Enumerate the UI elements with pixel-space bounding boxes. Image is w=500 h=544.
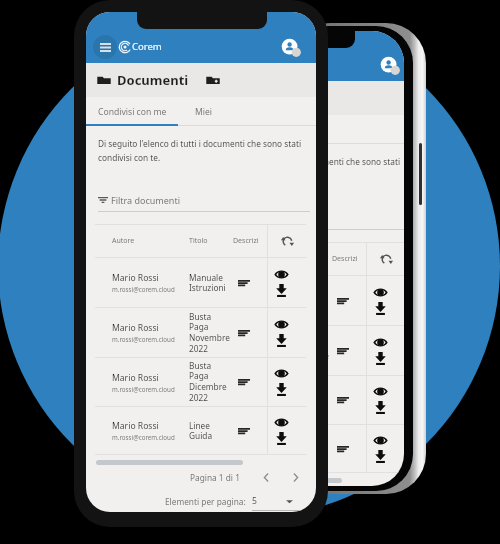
staticText: Titolo [297,254,337,264]
button[interactable]: Visualizza [373,287,388,298]
staticText: Miei [297,124,312,136]
staticText: Documenti [117,71,189,89]
staticText: m.rossi@corem.cloud [112,335,175,343]
staticText: Busta Paga Novembre 2022 [297,329,337,373]
button[interactable]: Nuova cartella [206,73,220,87]
staticText: Di seguito l'elenco di tutti i documenti… [297,156,404,181]
staticText: Mario Rossi [112,420,159,432]
button[interactable]: Scarica [276,284,287,297]
staticText: Busta Paga Dicembre 2022 [297,378,337,422]
staticText: Busta Paga Dicembre 2022 [189,360,238,404]
staticText: Linee Guida [189,420,238,442]
staticText: Di seguito l'elenco di tutti i documenti… [98,138,306,163]
button[interactable]: Scarica [375,302,386,315]
button[interactable]: Scarica [375,450,386,463]
button[interactable]: Visualizza [274,417,289,428]
staticText: m.rossi@corem.cloud [112,433,175,441]
button[interactable]: Condivisi con me [86,97,178,126]
staticText: Filtra documenti [111,194,180,206]
button[interactable]: Miei [178,97,230,126]
button[interactable]: Pagina precedente [260,471,273,484]
staticText: Autore [112,236,189,246]
button[interactable]: Miei [297,115,329,144]
button[interactable]: Visualizza [274,319,289,330]
button[interactable]: Visualizza [373,386,388,397]
staticText: Pagina 1 di 1 [190,472,240,483]
staticText: 5 [252,495,257,507]
staticText: Mario Rossi [112,272,159,284]
button[interactable]: Scarica [276,334,287,347]
staticText: Miei [195,106,213,118]
button[interactable]: Pagina successiva [289,471,302,484]
staticText: Mario Rossi [112,322,159,334]
button[interactable]: Scarica [375,401,386,414]
staticText: Descrizione [233,236,262,246]
staticText: Linee Guida [297,438,337,460]
button[interactable]: Visualizza [274,368,289,379]
staticText: Manuale Istruzioni [189,272,238,294]
staticText: Mario Rossi [112,372,159,384]
button[interactable]: Account [381,57,400,76]
staticText: Titolo [189,236,238,246]
button[interactable]: Nuova cartella [305,91,319,105]
button[interactable]: Scarica [276,432,287,445]
button[interactable]: Visualizza [373,435,388,446]
staticText: m.rossi@corem.cloud [112,285,175,293]
staticText: Elementi per pagina: [165,496,246,507]
staticText: m.rossi@corem.cloud [112,385,175,393]
staticText: Corem [132,40,162,53]
button[interactable]: Visualizza [373,337,388,348]
button[interactable]: Account [282,39,301,58]
button[interactable]: Scarica [375,352,386,365]
staticText: Condivisi con me [98,106,167,118]
button[interactable]: Seleziona elementi [285,497,294,506]
staticText: Descrizione [332,254,361,264]
button[interactable]: Menu [93,35,117,59]
staticText: Manuale Istruzioni [297,290,337,312]
button[interactable]: Visualizza [274,269,289,280]
staticText: Busta Paga Novembre 2022 [189,311,238,355]
button[interactable]: Scarica [276,383,287,396]
